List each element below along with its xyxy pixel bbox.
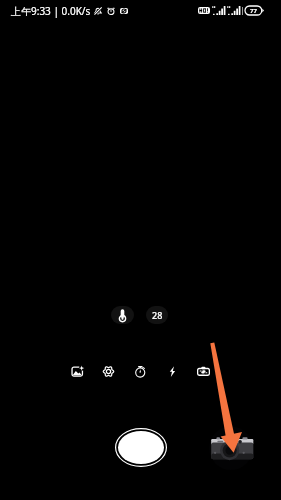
staticText: 28	[152, 309, 163, 321]
button[interactable]: Settings	[102, 365, 115, 378]
button[interactable]: Temperature	[111, 306, 134, 324]
button[interactable]: Filters	[71, 365, 84, 378]
button[interactable]: 28	[146, 306, 168, 324]
button[interactable]: Switch camera	[197, 365, 210, 378]
staticText: 77	[250, 7, 257, 15]
staticText: 上午9:33 | 0.0K/s	[11, 4, 91, 18]
button[interactable]: Timer	[134, 365, 147, 378]
button[interactable]: Flash	[166, 365, 179, 378]
button[interactable]: Shutter	[115, 428, 167, 467]
button[interactable]: Gallery	[206, 430, 258, 468]
